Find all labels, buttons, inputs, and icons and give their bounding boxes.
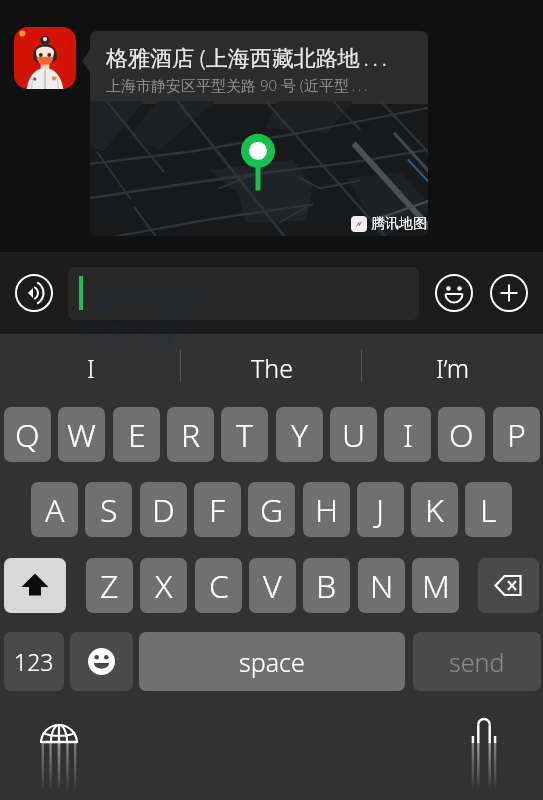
button[interactable]: K (411, 482, 458, 537)
button[interactable]: Z (86, 558, 133, 613)
button[interactable]: space (139, 632, 405, 691)
staticText: N (370, 564, 394, 608)
staticText: U (342, 413, 366, 457)
button[interactable]: R (167, 407, 214, 462)
staticText: D (152, 488, 175, 532)
button[interactable]: W (58, 407, 105, 462)
button[interactable] (14, 27, 76, 89)
button[interactable]: Voice message (14, 273, 54, 313)
staticText: P (507, 413, 526, 457)
staticText: The (251, 351, 293, 385)
staticText: S (100, 488, 118, 532)
button[interactable]: Backspace (478, 558, 539, 613)
staticText: X (155, 564, 173, 608)
button[interactable]: I (384, 407, 431, 462)
button[interactable]: T (221, 407, 268, 462)
button[interactable]: Emoji (434, 273, 474, 313)
button[interactable]: Q (4, 407, 51, 462)
button[interactable]: G (248, 482, 295, 537)
button[interactable]: V (249, 558, 296, 613)
staticText: K (425, 488, 444, 532)
staticText: I’m (436, 351, 470, 385)
button[interactable]: I (0, 334, 181, 396)
staticText: W (67, 413, 96, 457)
button[interactable]: D (140, 482, 187, 537)
button[interactable] (68, 267, 419, 320)
staticText: I (403, 413, 413, 457)
staticText: xczn.xyz (79, 311, 191, 350)
button[interactable]: Dictation (460, 705, 508, 800)
staticText: V (263, 564, 282, 608)
staticText: 修车指南 (91, 282, 203, 317)
button[interactable]: E (113, 407, 160, 462)
staticText: B (316, 564, 337, 608)
staticText: O (449, 413, 474, 457)
staticText: M (422, 564, 450, 608)
staticText: Q (15, 413, 40, 457)
staticText: Y (291, 413, 309, 457)
button[interactable]: A (31, 482, 78, 537)
button[interactable]: S (85, 482, 132, 537)
button[interactable]: U (330, 407, 377, 462)
button[interactable]: Change keyboard (35, 705, 83, 800)
button[interactable]: P (493, 407, 540, 462)
button[interactable]: More (489, 273, 529, 313)
button[interactable]: 格雅酒店 (上海西藏北路地 . . . (90, 31, 428, 236)
staticText: 腾讯地图 (371, 215, 427, 233)
staticText: 格雅酒店 (上海西藏北路地 . . . (106, 42, 391, 72)
staticText: space (239, 645, 305, 679)
button[interactable]: M (412, 558, 459, 613)
button[interactable]: O (438, 407, 485, 462)
staticText: C (209, 564, 229, 608)
staticText: E (128, 413, 146, 457)
staticText: H (315, 488, 339, 532)
button[interactable]: send (413, 632, 541, 691)
button[interactable]: C (195, 558, 242, 613)
button[interactable]: H (303, 482, 350, 537)
staticText: R (181, 413, 201, 457)
button[interactable]: Emoji keyboard (70, 632, 133, 691)
staticText: A (45, 488, 65, 532)
button[interactable]: 123 (4, 632, 64, 691)
staticText: L (480, 488, 497, 532)
staticText: 上海市静安区平型关路 90 号 (近平型 . . . (106, 75, 368, 95)
button[interactable]: Shift (4, 558, 66, 613)
button[interactable]: F (194, 482, 241, 537)
button[interactable]: L (465, 482, 512, 537)
staticText: T (236, 413, 253, 457)
button[interactable]: J (357, 482, 404, 537)
staticText: Z (100, 564, 119, 608)
button[interactable]: I’m (362, 334, 543, 396)
staticText: I (87, 351, 95, 385)
button[interactable]: Y (276, 407, 323, 462)
staticText: G (260, 488, 284, 532)
button[interactable]: N (358, 558, 405, 613)
button[interactable]: The (181, 334, 362, 396)
staticText: F (209, 488, 226, 532)
button[interactable]: B (303, 558, 350, 613)
button[interactable]: X (140, 558, 187, 613)
staticText: send (449, 645, 505, 679)
staticText: J (376, 488, 385, 532)
staticText: 123 (14, 646, 54, 677)
